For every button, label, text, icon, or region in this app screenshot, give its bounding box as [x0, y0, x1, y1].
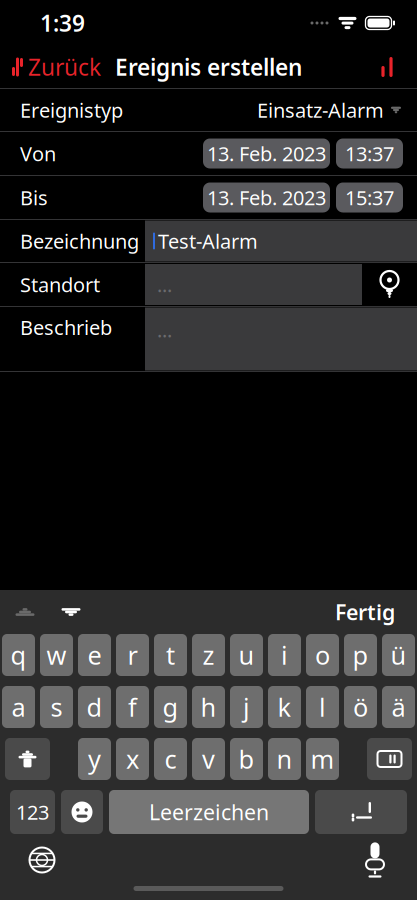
- staticText: Leerzeichen: [149, 798, 269, 826]
- button[interactable]: Diktieren: [349, 838, 401, 882]
- staticText: s: [50, 690, 62, 724]
- staticText: m: [310, 742, 334, 776]
- button[interactable]: q: [2, 634, 35, 676]
- staticText: Zurück: [28, 52, 101, 82]
- button[interactable]: r: [116, 634, 149, 676]
- staticText: ö: [353, 690, 368, 724]
- button[interactable]: h: [192, 686, 225, 728]
- staticText: h: [200, 690, 216, 724]
- button[interactable]: u: [230, 634, 263, 676]
- staticText: 123: [16, 799, 49, 825]
- staticText: z: [202, 638, 214, 672]
- button[interactable]: a: [2, 686, 35, 728]
- staticText: d: [86, 690, 102, 724]
- button[interactable]: Eingabe: [315, 790, 407, 834]
- staticText: w: [46, 638, 66, 672]
- button[interactable]: s: [40, 686, 73, 728]
- staticText: Fertig: [335, 598, 395, 626]
- button[interactable]: k: [268, 686, 301, 728]
- staticText: p: [352, 638, 368, 672]
- button[interactable]: 15:37: [336, 182, 403, 212]
- staticText: o: [315, 638, 330, 672]
- staticText: t: [166, 638, 175, 672]
- button[interactable]: y: [78, 738, 111, 780]
- button[interactable]: i: [268, 634, 301, 676]
- staticText: ä: [391, 690, 405, 724]
- staticText: k: [277, 690, 291, 724]
- staticText: x: [126, 742, 139, 776]
- staticText: a: [11, 690, 25, 724]
- staticText: q: [10, 638, 26, 672]
- staticText: ...: [157, 271, 172, 298]
- button[interactable]: Einsatz-Alarm: [145, 89, 417, 131]
- button[interactable]: Standort wählen: [362, 264, 417, 305]
- staticText: Ereignis erstellen: [115, 52, 302, 82]
- staticText: r: [127, 638, 137, 672]
- button[interactable]: n: [268, 738, 301, 780]
- button[interactable]: Leerzeichen: [109, 790, 309, 834]
- button[interactable]: j: [230, 686, 263, 728]
- button[interactable]: g: [154, 686, 187, 728]
- staticText: Beschrieb: [20, 314, 112, 341]
- staticText: j: [243, 690, 250, 724]
- staticText: i: [281, 638, 288, 672]
- staticText: l: [319, 690, 326, 724]
- button[interactable]: e: [78, 634, 111, 676]
- button[interactable]: p: [344, 634, 377, 676]
- staticText: u: [238, 638, 254, 672]
- button[interactable]: Vorheriges Feld: [2, 593, 48, 631]
- button[interactable]: w: [40, 634, 73, 676]
- button[interactable]: Nächstes Feld: [48, 593, 94, 631]
- staticText: Bezeichnung: [20, 228, 139, 254]
- staticText: Einsatz-Alarm: [257, 97, 384, 123]
- button[interactable]: Tastatur wechseln: [16, 838, 68, 882]
- staticText: 13. Feb. 2023: [207, 184, 326, 211]
- button[interactable]: Löschen: [367, 738, 412, 780]
- button[interactable]: Emoji: [61, 790, 103, 834]
- button[interactable]: ö: [344, 686, 377, 728]
- staticText: Von: [20, 140, 56, 167]
- button[interactable]: t: [154, 634, 187, 676]
- button[interactable]: 13. Feb. 2023: [203, 138, 330, 168]
- button[interactable]: 123: [10, 790, 55, 834]
- button[interactable]: ä: [382, 686, 415, 728]
- staticText: f: [128, 690, 137, 724]
- staticText: ü: [390, 638, 406, 672]
- staticText: ...: [157, 316, 172, 343]
- staticText: Bis: [20, 184, 48, 211]
- button[interactable]: o: [306, 634, 339, 676]
- button[interactable]: z: [192, 634, 225, 676]
- button[interactable]: d: [78, 686, 111, 728]
- staticText: Test-Alarm: [158, 228, 258, 254]
- button[interactable]: Zurück: [0, 44, 101, 90]
- button[interactable]: 13. Feb. 2023: [203, 182, 330, 212]
- button[interactable]: Umschalten: [5, 738, 50, 780]
- button[interactable]: Speichern: [375, 48, 417, 86]
- staticText: Ereignistyp: [20, 97, 123, 123]
- staticText: 13. Feb. 2023: [207, 140, 326, 167]
- staticText: c: [164, 742, 176, 776]
- staticText: 13:37: [345, 140, 394, 167]
- staticText: n: [276, 742, 292, 776]
- button[interactable]: ü: [382, 634, 415, 676]
- staticText: g: [162, 690, 178, 724]
- staticText: b: [238, 742, 254, 776]
- button[interactable]: f: [116, 686, 149, 728]
- button[interactable]: m: [306, 738, 339, 780]
- button[interactable]: v: [192, 738, 225, 780]
- button[interactable]: c: [154, 738, 187, 780]
- button[interactable]: l: [306, 686, 339, 728]
- staticText: 15:37: [345, 184, 394, 211]
- staticText: 1:39: [40, 8, 85, 38]
- button[interactable]: x: [116, 738, 149, 780]
- button[interactable]: b: [230, 738, 263, 780]
- staticText: y: [88, 742, 101, 776]
- staticText: v: [202, 742, 215, 776]
- staticText: e: [87, 638, 101, 672]
- button[interactable]: Fertig: [321, 593, 409, 631]
- button[interactable]: Test-Alarm: [145, 220, 417, 261]
- button[interactable]: 13:37: [336, 138, 403, 168]
- staticText: Standort: [20, 271, 100, 298]
